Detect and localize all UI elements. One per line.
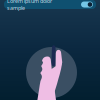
staticText: sample [7,4,25,12]
button[interactable]: Lorem ipsum dolor [4,0,96,9]
staticText: Lorem ipsum dolor [7,0,52,4]
